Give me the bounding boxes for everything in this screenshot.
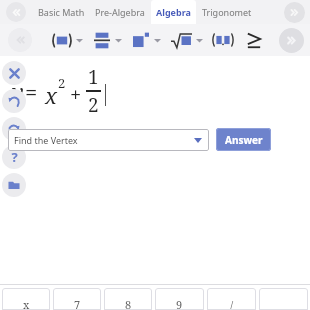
staticText: = — [25, 76, 38, 106]
button[interactable]: Fraction — [92, 29, 112, 51]
staticText: Basic Math — [38, 6, 85, 18]
button[interactable]: Close — [2, 61, 26, 85]
button[interactable]: Find the Vertex — [8, 129, 209, 151]
staticText: + — [70, 81, 82, 108]
staticText: Pre-Algebra — [95, 6, 145, 18]
button[interactable]: Parentheses — [51, 30, 73, 50]
staticText: 2 — [88, 92, 99, 118]
button[interactable]: Folder — [2, 173, 26, 197]
staticText: 1 — [88, 64, 99, 90]
button[interactable]: Pre-Algebra — [93, 0, 147, 24]
button[interactable]: Expand — [193, 30, 205, 50]
button[interactable]: Exponent — [131, 29, 151, 51]
button[interactable]: Previous categories — [6, 2, 26, 22]
staticText: x — [23, 297, 30, 310]
button[interactable]: Expand — [151, 30, 163, 50]
button[interactable]: More tools — [279, 28, 304, 53]
button[interactable]: 7 — [53, 288, 101, 310]
button[interactable]: / — [207, 288, 256, 310]
staticText: Algebra — [156, 6, 191, 18]
staticText: / — [230, 297, 234, 310]
staticText: 8 — [125, 297, 132, 310]
button[interactable]: 9 — [155, 288, 204, 310]
button[interactable]: Greater than or equal — [244, 29, 264, 51]
staticText: 2 — [58, 74, 66, 92]
button[interactable]: Square root — [169, 29, 193, 51]
button[interactable]: Basic Math — [36, 0, 87, 24]
button[interactable]: Undo — [2, 89, 26, 113]
button[interactable]: Algebra — [151, 0, 196, 24]
button[interactable]: 8 — [104, 288, 152, 310]
staticText: ? — [11, 148, 18, 166]
button[interactable]: Redo — [2, 117, 26, 141]
button[interactable]: Expand — [112, 30, 124, 50]
button[interactable]: Matrix — [211, 30, 235, 50]
button[interactable]: Trigonomet — [200, 0, 254, 24]
staticText: y — [12, 76, 24, 106]
staticText: 7 — [74, 297, 81, 310]
staticText: x — [45, 80, 58, 110]
button[interactable]: x — [2, 288, 50, 310]
button[interactable]: Previous tools — [8, 28, 32, 52]
staticText: Trigonomet — [202, 6, 252, 18]
button[interactable]: More categories — [284, 2, 305, 23]
staticText: 9 — [176, 297, 183, 310]
button[interactable] — [259, 288, 308, 310]
button[interactable]: Help — [2, 145, 26, 169]
button[interactable]: Answer — [216, 128, 271, 151]
staticText: Answer — [225, 133, 263, 147]
button[interactable]: Expand — [73, 30, 85, 50]
staticText: Find the Vertex — [14, 134, 78, 146]
